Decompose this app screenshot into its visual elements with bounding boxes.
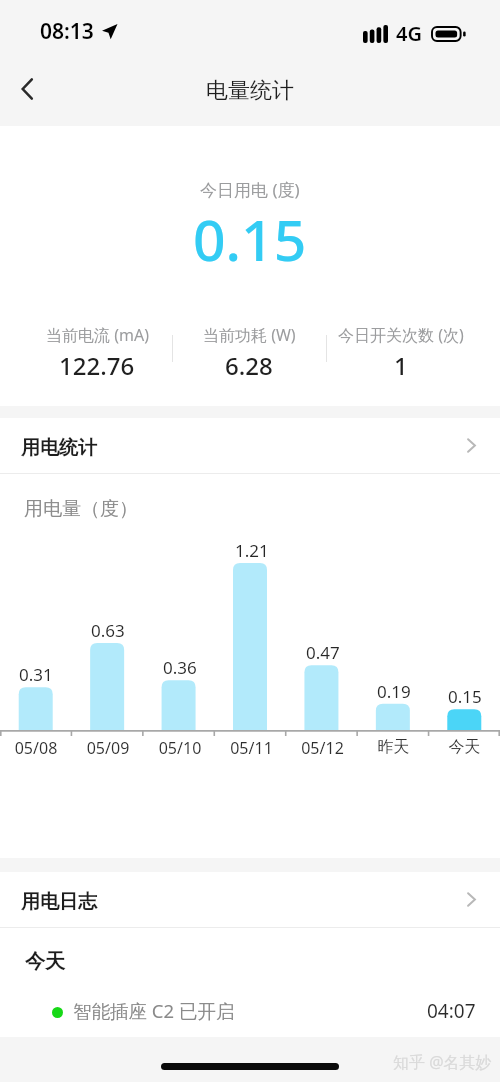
button[interactable]: 智能插座 C2 已开启 (0, 991, 500, 1027)
staticText: 用电日志 (21, 890, 97, 914)
staticText: 4G (396, 20, 422, 47)
staticText: 0.15 (193, 200, 307, 278)
staticText: 05/09 (72, 737, 144, 759)
staticText: 04:07 (427, 998, 476, 1024)
staticText: 电量统计 (206, 77, 294, 105)
staticText: 0.36 (163, 656, 197, 679)
staticText: 用电量（度） (24, 497, 138, 521)
button[interactable]: 用电日志 (0, 872, 500, 927)
staticText: 05/12 (287, 737, 358, 759)
staticText: 05/11 (216, 737, 287, 759)
staticText: 今日用电 (度) (200, 178, 300, 201)
staticText: 6.28 (225, 349, 273, 382)
staticText: 今天 (429, 737, 500, 757)
staticText: 智能插座 C2 已开启 (73, 998, 235, 1023)
staticText: 当前电流 (mA) (46, 324, 149, 346)
staticText: 0.63 (91, 619, 125, 642)
staticText: 1 (394, 349, 408, 382)
staticText: 用电统计 (21, 436, 97, 460)
button[interactable]: 用电统计 (0, 418, 500, 473)
staticText: 05/10 (144, 737, 216, 759)
staticText: 1.21 (235, 539, 269, 562)
staticText: 0.47 (306, 641, 340, 664)
staticText: 今天 (25, 949, 65, 974)
staticText: 当前功耗 (W) (203, 324, 296, 346)
staticText: 今日开关次数 (次) (338, 324, 464, 346)
staticText: 08:13 (40, 17, 94, 46)
staticText: 0.15 (448, 685, 482, 708)
staticText: 知乎 @名其妙 (393, 1051, 492, 1073)
staticText: 昨天 (358, 737, 429, 757)
button[interactable]: Back (8, 69, 48, 109)
staticText: 122.76 (59, 349, 135, 382)
staticText: 0.19 (377, 680, 411, 703)
staticText: 0.31 (19, 663, 53, 686)
staticText: 05/08 (0, 737, 72, 759)
